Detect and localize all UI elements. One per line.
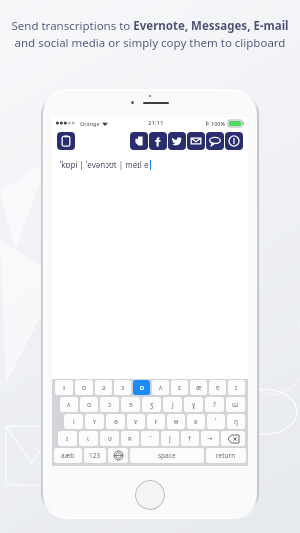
staticText: j [172, 400, 174, 409]
staticText: 21:11 [148, 119, 164, 127]
staticText: ɤ [134, 417, 138, 426]
button[interactable]: ˈ [207, 414, 225, 429]
button[interactable]: ʋ [100, 431, 119, 446]
button[interactable]: ɤ [127, 414, 145, 429]
button[interactable]: ʃ [161, 431, 179, 446]
button[interactable]: ʒ [142, 397, 161, 412]
staticText: 100% [211, 120, 226, 127]
button[interactable]: ʊ [75, 380, 93, 395]
button[interactable]: E-mail [187, 132, 205, 150]
button[interactable]: ɯ [226, 397, 245, 412]
button[interactable]: ɜ [114, 380, 131, 395]
button[interactable]: e [209, 380, 226, 395]
staticText: ɜ [121, 383, 125, 392]
staticText: ʉ [174, 417, 179, 426]
staticText: ɔ [108, 400, 112, 409]
button[interactable]: ʔ [205, 397, 224, 412]
staticText: ɛ [178, 383, 182, 392]
button[interactable]: Backspace [221, 431, 245, 446]
staticText: ʒ [150, 400, 154, 409]
staticText: i [73, 417, 75, 426]
staticText: ŋ [234, 417, 239, 426]
button[interactable]: ʌ [60, 397, 78, 412]
staticText: 123 [89, 451, 101, 460]
staticText: ʔ [213, 400, 216, 409]
staticText: ʀ [128, 434, 132, 443]
staticText: ˈ [215, 417, 217, 426]
button[interactable]: Twitter [168, 132, 186, 150]
staticText: ʃ [169, 434, 171, 443]
button[interactable]: ə [95, 380, 112, 395]
staticText: ɵ [114, 417, 118, 426]
staticText: ˇ [149, 434, 152, 443]
button[interactable]: ʏ [85, 414, 104, 429]
button[interactable]: Change keyboard [108, 448, 128, 463]
button[interactable]: aæb [54, 448, 82, 463]
button[interactable]: æ [190, 380, 207, 395]
staticText: aæb [61, 451, 75, 460]
button[interactable]: ɔ [100, 397, 119, 412]
button[interactable]: i [64, 414, 83, 429]
button[interactable]: ŋ [227, 414, 245, 429]
staticText: ɨ [155, 417, 157, 426]
staticText: ↑ [187, 435, 193, 443]
button[interactable]: ɒ [133, 380, 150, 395]
button[interactable]: ʉ [167, 414, 185, 429]
button[interactable]: ɵ [106, 414, 125, 429]
button[interactable]: ʌ [152, 380, 169, 395]
staticText: ɣ [192, 400, 196, 409]
staticText: ʌ [159, 383, 163, 392]
staticText: ɪ [63, 383, 66, 392]
staticText: ɪ [235, 383, 238, 392]
staticText: ʏ [93, 417, 97, 426]
button[interactable]: return [206, 448, 246, 463]
staticText: ˈkɒpi | ˈevənɔʊt | meɪl e [60, 159, 149, 170]
staticText: ɐ [194, 417, 198, 426]
button[interactable]: ↑ [181, 431, 199, 446]
button[interactable]: j [163, 397, 182, 412]
button[interactable]: ɑ [80, 397, 98, 412]
button[interactable]: ɪ [228, 380, 245, 395]
button[interactable]: Evernote [130, 132, 148, 150]
button[interactable]: Facebook [149, 132, 167, 150]
button[interactable]: 123 [84, 448, 106, 463]
staticText: space [158, 451, 176, 460]
button[interactable]: ɐ [187, 414, 205, 429]
button[interactable]: ɣ [184, 397, 203, 412]
staticText: ʊ [82, 383, 86, 392]
staticText: Send transcriptions to Evernote, Message… [10, 18, 290, 50]
staticText: e [216, 383, 220, 392]
staticText: ʌ [67, 400, 71, 409]
staticText: ɒ [140, 383, 144, 392]
button[interactable]: space [130, 448, 204, 463]
staticText: æ [196, 383, 202, 392]
staticText: return [216, 451, 236, 460]
button[interactable]: ɨ [147, 414, 165, 429]
staticText: ɘ [129, 400, 133, 409]
staticText: ɪ [66, 434, 69, 443]
staticText: ə [102, 383, 106, 392]
button[interactable]: ʀ [121, 431, 139, 446]
button[interactable]: ɘ [121, 397, 140, 412]
staticText: ʋ [108, 434, 112, 443]
button[interactable]: ɪ [58, 431, 77, 446]
button[interactable]: ˇ [141, 431, 159, 446]
staticText: → [207, 435, 213, 443]
button[interactable]: ɩ [79, 431, 98, 446]
staticText: ɩ [87, 434, 90, 443]
button[interactable]: Messages [206, 132, 224, 150]
button[interactable]: → [201, 431, 219, 446]
staticText: Orange [80, 120, 100, 127]
button[interactable]: ɛ [171, 380, 188, 395]
staticText: ɑ [87, 400, 91, 409]
staticText: ɯ [232, 400, 239, 409]
button[interactable]: ɪ [55, 380, 73, 395]
button[interactable]: Info [225, 132, 243, 150]
button[interactable]: Copy to clipboard [57, 132, 75, 150]
